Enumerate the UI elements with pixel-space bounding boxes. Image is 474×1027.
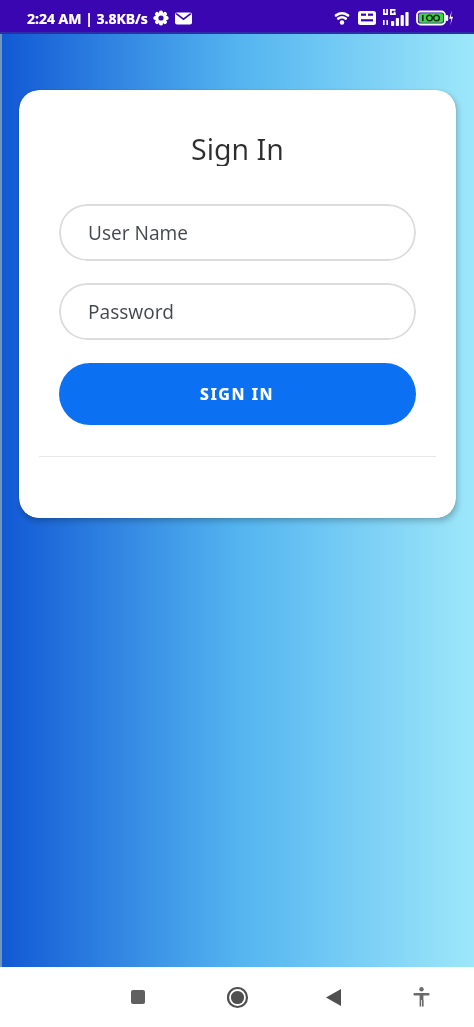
- staticText: Password: [88, 299, 174, 325]
- staticText: Sign In: [191, 130, 284, 166]
- staticText: 2:24 AM | 3.8KB/s: [27, 9, 148, 28]
- button[interactable]: SIGN IN: [59, 363, 416, 425]
- button[interactable]: [397, 973, 445, 1021]
- button[interactable]: User Name: [59, 204, 416, 261]
- staticText: SIGN IN: [200, 383, 275, 405]
- button[interactable]: [213, 973, 261, 1021]
- button[interactable]: [114, 973, 162, 1021]
- staticText: User Name: [88, 220, 189, 246]
- button[interactable]: [309, 973, 357, 1021]
- button[interactable]: Password: [59, 283, 416, 340]
